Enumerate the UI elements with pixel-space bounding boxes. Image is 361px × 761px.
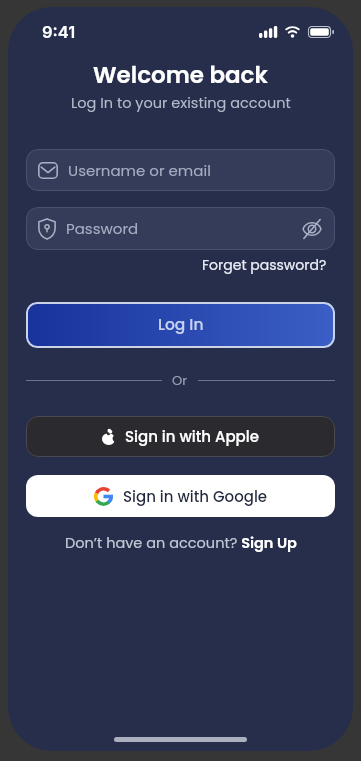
button[interactable]: Forget password?: [202, 255, 335, 275]
staticText: Log In: [158, 314, 204, 336]
staticText: Sign in with Google: [123, 486, 268, 507]
staticText: Forget password?: [202, 255, 327, 275]
staticText: Log In to your existing account: [71, 93, 291, 113]
staticText: Don’t have an account? Sign Up: [65, 533, 297, 553]
staticText: Or: [172, 371, 188, 389]
button[interactable]: Don’t have an account? Sign Up: [65, 533, 297, 553]
button[interactable]: Log In: [26, 302, 335, 348]
button[interactable]: Sign in with Google: [26, 475, 335, 517]
staticText: Username or email: [68, 160, 211, 181]
staticText: Password: [66, 218, 139, 239]
button[interactable]: Password: [26, 207, 335, 250]
button[interactable]: Sign in with Apple: [26, 416, 335, 457]
staticText: Welcome back: [93, 59, 268, 91]
button[interactable]: Username or email: [26, 149, 335, 191]
staticText: 9:41: [42, 22, 76, 42]
staticText: Sign in with Apple: [125, 426, 259, 447]
